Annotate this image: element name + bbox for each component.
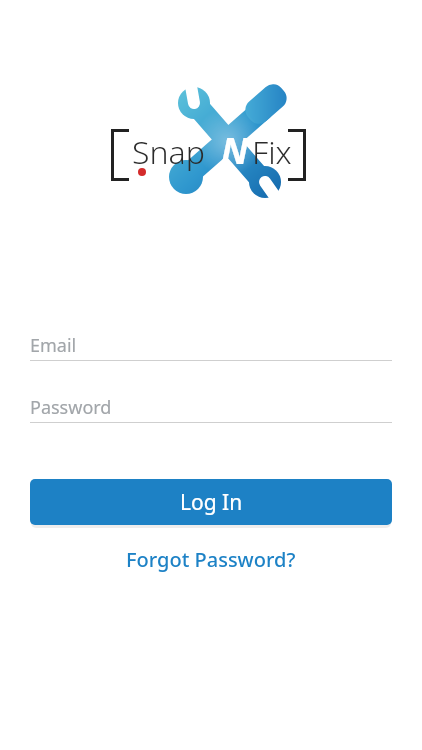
staticText: Fix — [252, 130, 292, 174]
staticText: N — [221, 126, 249, 175]
staticText: Forgot Password? — [126, 546, 296, 573]
staticText: Log In — [180, 488, 243, 517]
button[interactable]: Forgot Password? — [0, 543, 422, 575]
staticText: Snap — [132, 130, 205, 174]
button[interactable]: Email — [30, 328, 392, 362]
staticText: Email — [30, 333, 77, 358]
button[interactable]: Password — [30, 390, 392, 424]
button[interactable]: Log In — [30, 479, 392, 525]
staticText: Password — [30, 395, 112, 420]
